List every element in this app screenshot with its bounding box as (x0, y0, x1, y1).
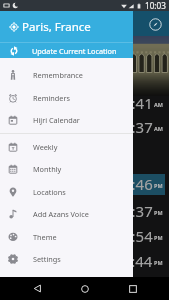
staticText: Hijri Calendar (33, 115, 80, 125)
staticText: 8:54 (123, 226, 153, 246)
staticText: 10:44 (114, 251, 153, 271)
button[interactable]: Settings (0, 247, 133, 270)
staticText: Locations (33, 187, 66, 197)
staticText: 1:46 (123, 174, 153, 194)
staticText: Paris, France (22, 19, 91, 35)
button[interactable]: Monthly (0, 157, 133, 180)
staticText: Update Current Location (32, 46, 117, 56)
button[interactable]: 10:44 (0, 251, 169, 272)
button[interactable]: Add Azans Voice (0, 202, 133, 225)
button[interactable]: Weekly (0, 135, 133, 158)
staticText: PM (154, 259, 163, 266)
button[interactable]: Locations (0, 180, 133, 203)
button[interactable]: Paris, France (0, 11, 133, 42)
button[interactable]: 1:46 (0, 174, 169, 195)
staticText: PM (154, 209, 163, 216)
button[interactable]: Home (74, 278, 95, 299)
button[interactable]: Update Current Location (0, 43, 133, 58)
button[interactable]: 8:54 (0, 226, 169, 247)
button[interactable]: Hijri Calendar (0, 108, 133, 131)
staticText: Settings (33, 254, 61, 264)
staticText: PM (154, 234, 163, 241)
button[interactable]: Remembrance (0, 63, 133, 86)
button[interactable]: 7:37 (0, 117, 169, 138)
staticText: AM (154, 125, 163, 132)
button[interactable]: Recents (122, 278, 143, 299)
staticText: Monthly (33, 164, 62, 174)
staticText: Add Azans Voice (33, 209, 89, 219)
staticText: Remembrance (33, 70, 83, 80)
button[interactable]: 5:37 (0, 201, 169, 222)
button[interactable]: Reminders (0, 86, 133, 109)
staticText: 5:37 (123, 201, 153, 221)
button[interactable]: Theme (0, 225, 133, 248)
staticText: PM (154, 182, 163, 189)
button[interactable]: Qibla compass (147, 16, 163, 32)
button[interactable]: 5:41 (0, 93, 169, 114)
staticText: AM (154, 101, 163, 108)
button[interactable]: Back (27, 278, 48, 299)
staticText: 5:41 (123, 93, 153, 113)
staticText: Reminders (33, 93, 70, 103)
staticText: 7:37 (123, 117, 153, 137)
staticText: 10:03 (145, 0, 166, 11)
staticText: Theme (33, 232, 57, 242)
staticText: Weekly (33, 142, 58, 152)
